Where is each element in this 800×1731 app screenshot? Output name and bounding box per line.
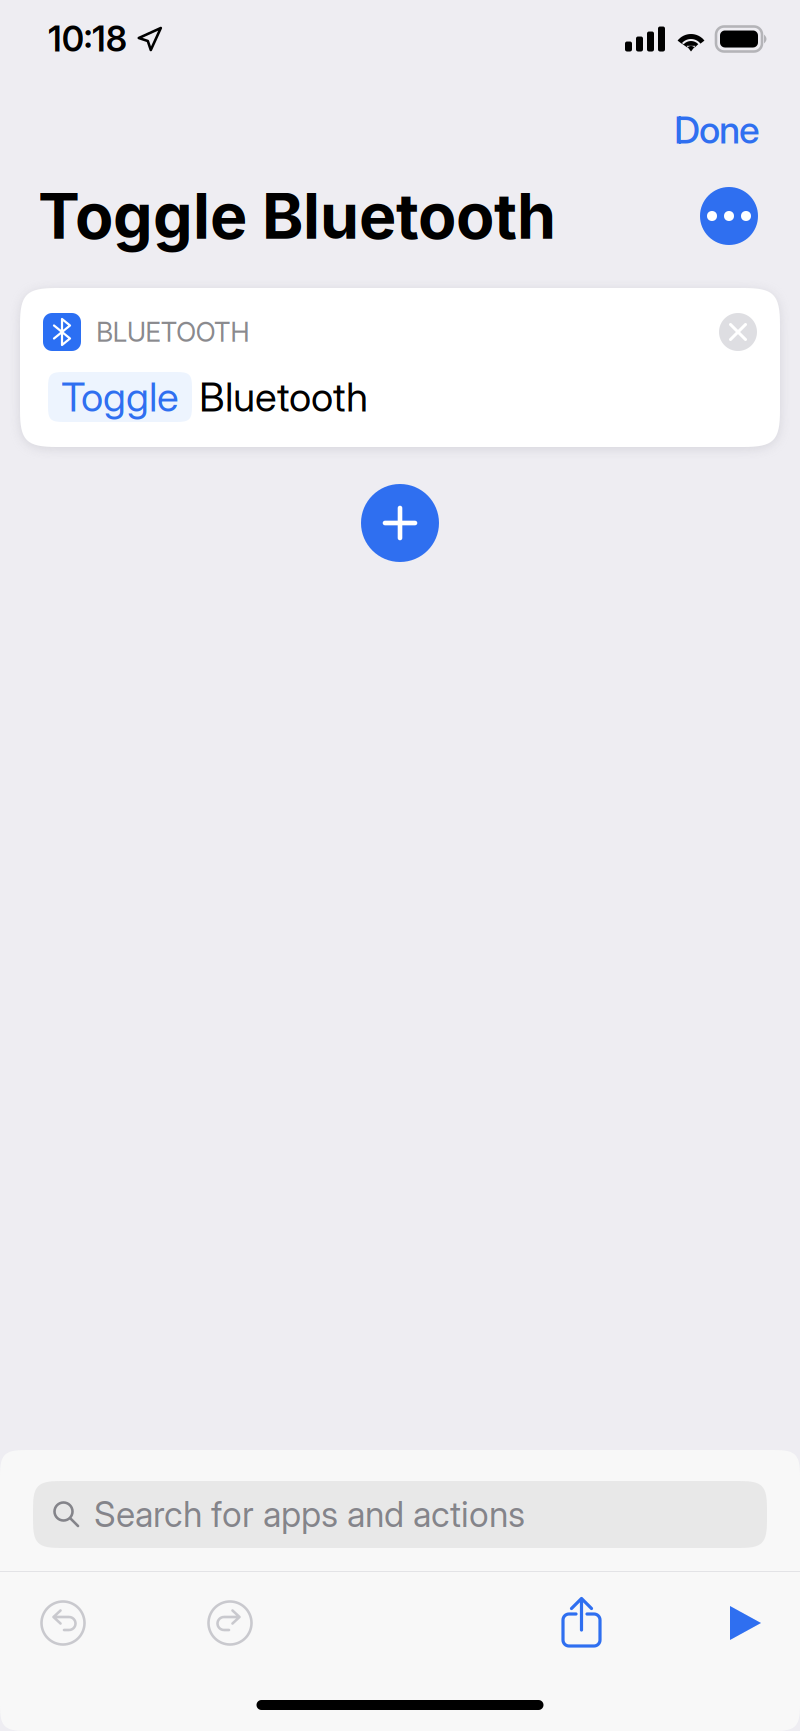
staticText: Search for apps and actions [94,1493,525,1535]
button[interactable]: Share [563,1597,601,1649]
button[interactable]: Run [729,1605,762,1641]
staticText: 10:18 [48,18,127,60]
staticText: Toggle [61,373,179,421]
staticText: Toggle Bluetooth [38,178,556,254]
button[interactable]: Done [668,101,766,159]
button[interactable]: More options [700,187,758,245]
staticText: Bluetooth [199,373,368,421]
button[interactable]: Remove action [719,313,757,351]
staticText: BLUETOOTH [96,316,250,348]
staticText: Done [674,107,760,153]
button[interactable]: Undo [38,1598,88,1648]
button[interactable]: Add action [361,484,439,562]
button[interactable]: Redo [205,1598,255,1648]
button[interactable]: Search for apps and actions [33,1481,767,1548]
